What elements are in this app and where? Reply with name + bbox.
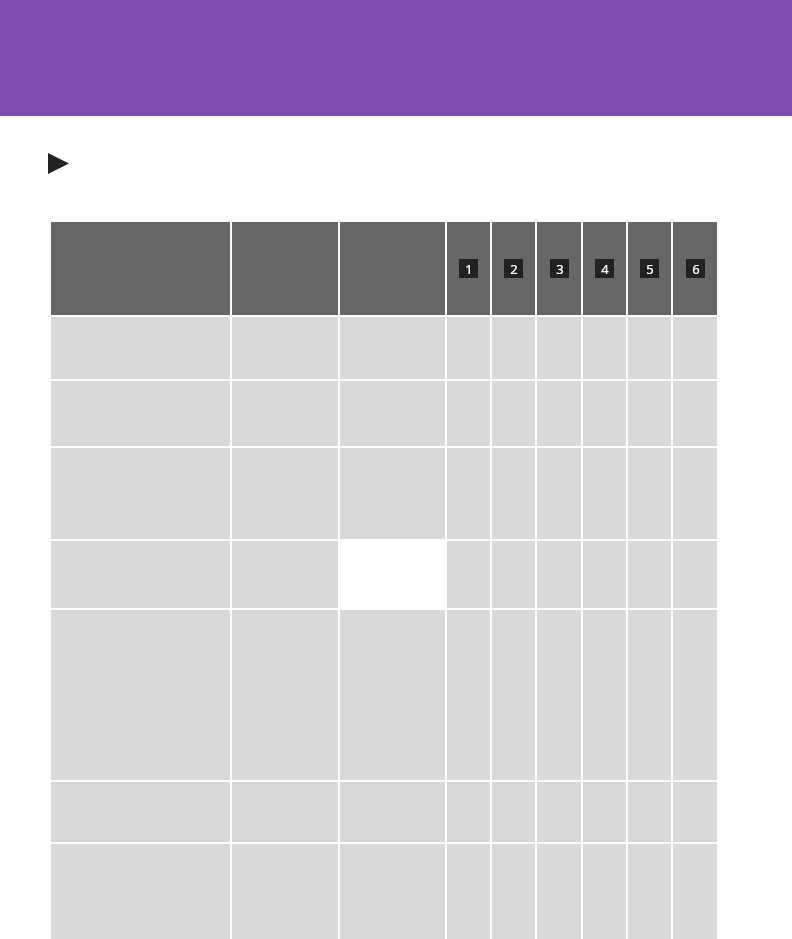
button[interactable]: Column 3 (537, 222, 581, 315)
button[interactable]: Column 6 (673, 222, 717, 315)
button[interactable]: Column 5 (628, 222, 671, 315)
staticText: 1 (465, 260, 473, 278)
button[interactable]: Play (48, 151, 72, 175)
button[interactable]: Column 1 (447, 222, 490, 315)
staticText: 4 (601, 260, 609, 278)
staticText: 3 (556, 260, 564, 278)
button[interactable]: Column 4 (583, 222, 626, 315)
staticText: 6 (692, 260, 700, 278)
button[interactable]: Column 2 (492, 222, 535, 315)
staticText: 5 (646, 260, 654, 278)
staticText: 2 (510, 260, 518, 278)
